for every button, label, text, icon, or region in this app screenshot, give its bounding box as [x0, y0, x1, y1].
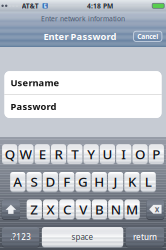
staticText: B — [95, 200, 104, 218]
staticText: G — [78, 173, 88, 190]
button[interactable]: J — [108, 172, 123, 191]
staticText: U — [102, 145, 112, 163]
button[interactable]: return — [126, 227, 164, 247]
staticText: C — [63, 200, 71, 218]
staticText: Enter network information — [41, 14, 125, 23]
button[interactable]: F — [59, 172, 74, 191]
button[interactable]: E — [35, 144, 50, 164]
staticText: P — [152, 145, 160, 163]
button[interactable]: I — [116, 144, 131, 164]
staticText: M — [126, 200, 138, 218]
staticText: E — [44, 2, 47, 9]
staticText: O — [135, 145, 145, 163]
staticText: S — [31, 173, 38, 190]
staticText: Password — [10, 100, 56, 113]
staticText: AT&T — [22, 1, 39, 10]
button[interactable]: Shift — [2, 200, 20, 219]
staticText: Q — [5, 145, 15, 163]
staticText: A — [13, 173, 22, 190]
staticText: N — [111, 200, 121, 218]
staticText: R — [55, 145, 63, 163]
button[interactable]: N — [108, 200, 123, 219]
staticText: return — [133, 232, 157, 242]
button[interactable]: C — [59, 200, 74, 219]
button[interactable]: B — [92, 200, 107, 219]
staticText: X — [47, 200, 55, 218]
staticText: Z — [30, 200, 38, 218]
staticText: H — [94, 173, 104, 190]
staticText: D — [45, 173, 55, 190]
button[interactable]: .?123 — [2, 227, 39, 247]
staticText: Y — [87, 145, 95, 163]
staticText: T — [71, 145, 78, 163]
button[interactable]: A — [10, 172, 25, 191]
button[interactable]: D — [43, 172, 58, 191]
staticText: W — [19, 145, 32, 163]
button[interactable]: T — [67, 144, 82, 164]
button[interactable]: R — [51, 144, 66, 164]
staticText: Username — [10, 76, 59, 89]
staticText: Cancel — [137, 32, 158, 41]
staticText: .?123 — [10, 232, 31, 242]
staticText: I — [121, 145, 126, 163]
button[interactable]: K — [124, 172, 139, 191]
button[interactable]: U — [100, 144, 115, 164]
button[interactable]: Delete — [146, 200, 164, 219]
button[interactable]: space — [42, 227, 123, 247]
staticText: x — [155, 204, 160, 214]
button[interactable]: X — [43, 200, 58, 219]
staticText: L — [145, 173, 152, 190]
staticText: Enter Password — [43, 30, 116, 43]
staticText: 4:18 PM — [87, 1, 113, 10]
staticText: F — [63, 173, 70, 190]
button[interactable]: Z — [27, 200, 42, 219]
button[interactable]: Cancel — [133, 31, 162, 41]
button[interactable]: S — [27, 172, 42, 191]
button[interactable]: V — [76, 200, 91, 219]
staticText: J — [114, 173, 118, 190]
staticText: V — [79, 200, 87, 218]
button[interactable]: Q — [2, 144, 17, 164]
button[interactable]: P — [149, 144, 164, 164]
button[interactable]: G — [75, 172, 91, 191]
button[interactable]: Y — [84, 144, 99, 164]
button[interactable]: O — [132, 144, 148, 164]
button[interactable]: H — [92, 172, 107, 191]
button[interactable]: W — [18, 144, 33, 164]
staticText: E — [39, 145, 46, 163]
button[interactable]: L — [141, 172, 156, 191]
staticText: K — [128, 173, 136, 190]
staticText: space — [72, 232, 94, 242]
button[interactable]: M — [125, 200, 140, 219]
